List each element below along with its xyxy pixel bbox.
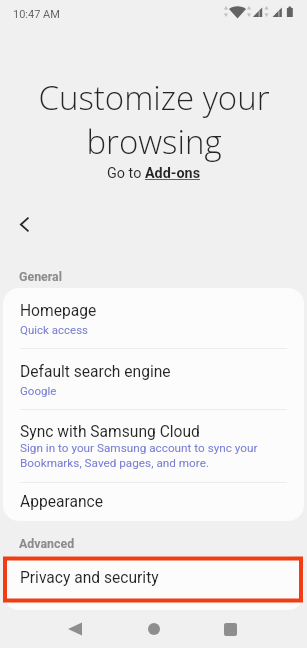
button[interactable]: Privacy and security (3, 556, 304, 610)
staticText: Homepage (20, 302, 97, 320)
button[interactable]: Appearance (3, 483, 304, 521)
staticText: Sign in to your Samsung account to sync … (20, 441, 258, 470)
staticText: Customize your browsing (38, 75, 270, 163)
staticText: Privacy and security (20, 569, 159, 587)
staticText: 10:47 AM (13, 8, 60, 21)
staticText: Default search engine (20, 363, 171, 381)
button[interactable]: Homepage (3, 288, 304, 348)
staticText: Appearance (20, 493, 103, 511)
staticText: Advanced (19, 536, 75, 551)
staticText: Google (20, 384, 57, 397)
staticText: Quick access (20, 323, 89, 336)
button[interactable]: Navigate up (4, 204, 44, 244)
button[interactable]: Sync with Samsung Cloud (3, 410, 304, 482)
button[interactable]: Recent apps (208, 610, 252, 648)
button[interactable]: Home (132, 610, 176, 648)
button[interactable]: Default search engine (3, 349, 304, 409)
staticText: General (19, 269, 63, 284)
button[interactable]: Go to Add-ons (107, 165, 201, 182)
staticText: Sync with Samsung Cloud (20, 423, 200, 441)
button[interactable]: Back (53, 610, 97, 648)
